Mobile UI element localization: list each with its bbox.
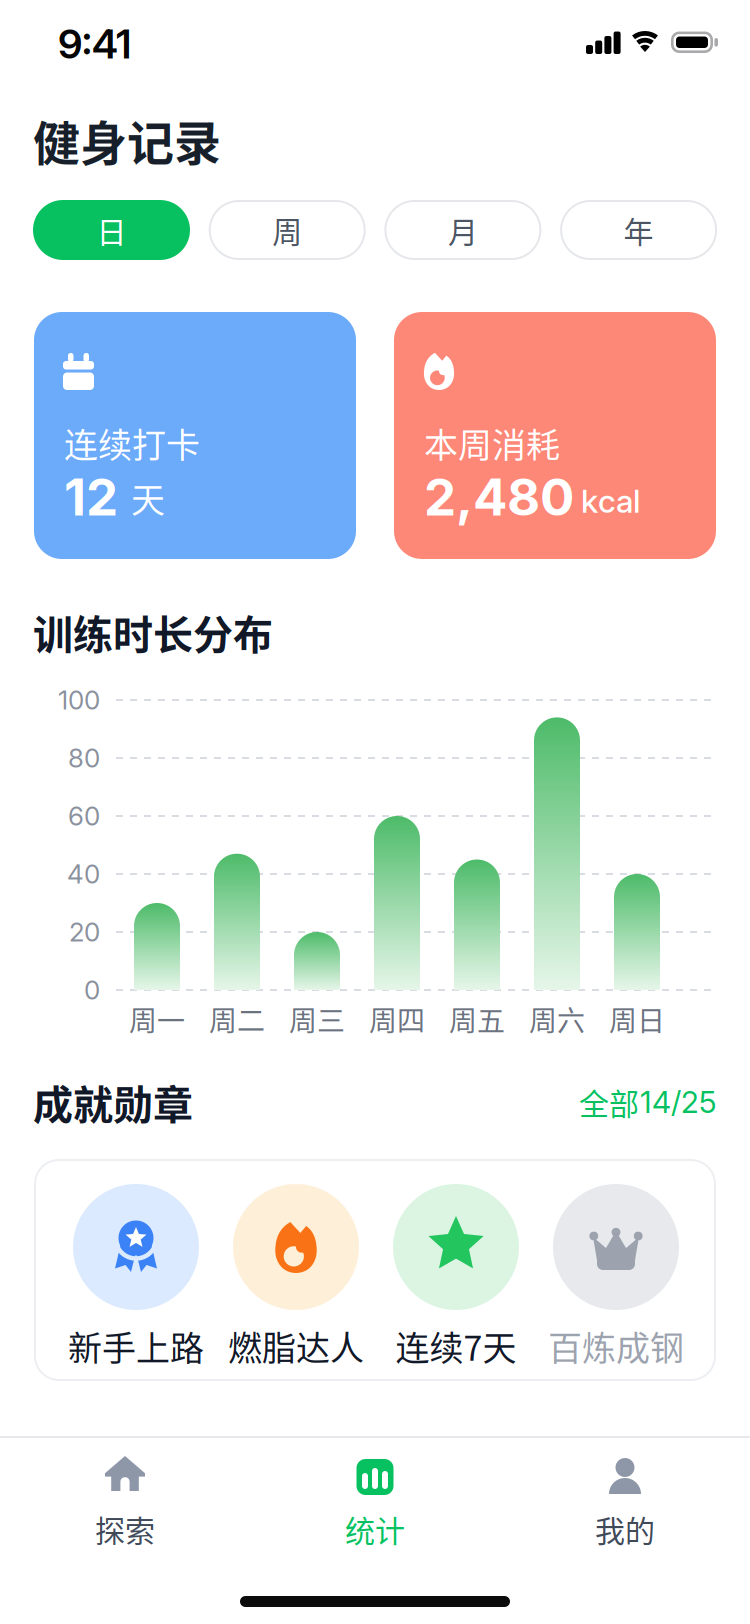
staticText: 连续打卡 [64, 418, 200, 468]
staticText: 40 [67, 858, 100, 890]
staticText: 12 [64, 466, 118, 528]
staticText: 周二 [209, 999, 265, 1039]
staticText: 全部 [579, 1080, 639, 1124]
staticText: 80 [68, 742, 100, 774]
staticText: 0 [84, 974, 100, 1006]
staticText: kcal [581, 482, 640, 520]
staticText: 月 [448, 208, 478, 252]
staticText: 我的 [595, 1507, 655, 1551]
staticText: 本周消耗 [424, 418, 560, 468]
staticText: 训练时长分布 [33, 603, 273, 661]
staticText: 周六 [529, 999, 585, 1039]
staticText: 周 [272, 208, 302, 252]
staticText: 100 [58, 684, 100, 716]
staticText: 周一 [129, 999, 185, 1039]
staticText: 60 [68, 800, 100, 832]
staticText: 探索 [95, 1507, 155, 1551]
staticText: 百炼成钢 [548, 1321, 684, 1371]
staticText: 周五 [449, 999, 505, 1039]
staticText: 年 [624, 208, 654, 252]
staticText: 周三 [289, 999, 345, 1039]
staticText: 2,480 [424, 466, 574, 528]
staticText: 9:41 [58, 20, 131, 68]
staticText: 20 [69, 916, 100, 948]
staticText: 健身记录 [33, 106, 221, 174]
staticText: 周四 [369, 999, 425, 1039]
staticText: 周日 [609, 999, 665, 1039]
staticText: 燃脂达人 [228, 1321, 364, 1371]
staticText: 日 [96, 208, 126, 252]
staticText: 统计 [345, 1507, 405, 1551]
staticText: 天 [131, 473, 165, 523]
staticText: 连续7天 [395, 1321, 516, 1371]
staticText: 新手上路 [68, 1321, 204, 1371]
staticText: 成就勋章 [33, 1073, 193, 1131]
staticText: 14/25 [640, 1084, 717, 1120]
